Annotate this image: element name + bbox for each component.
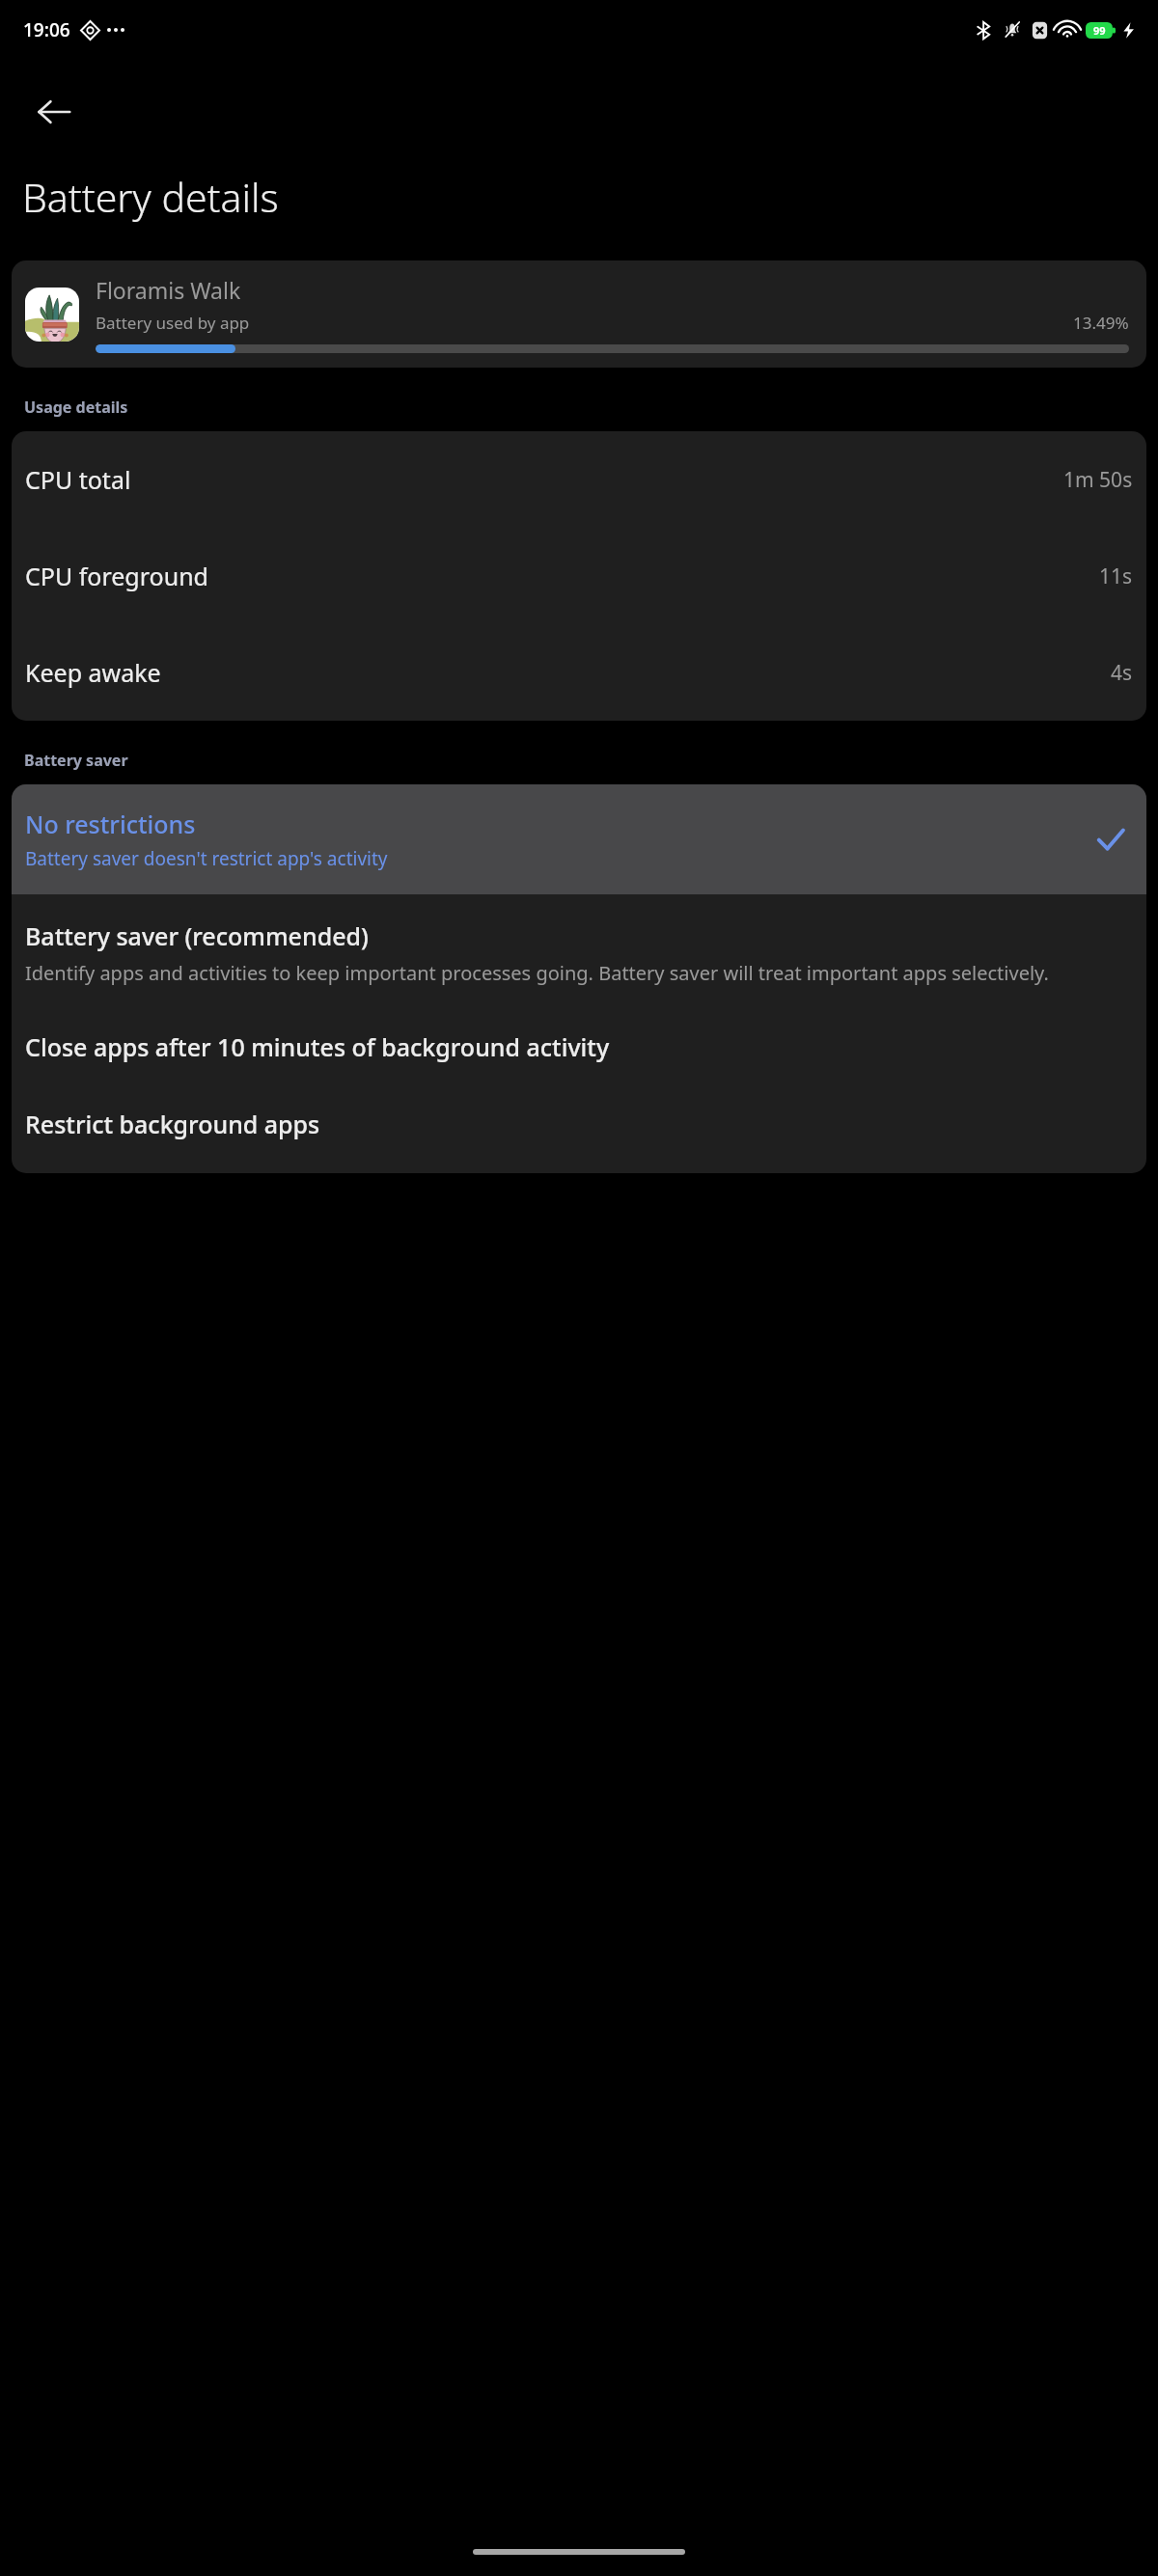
staticText: Floramis Walk (96, 275, 241, 305)
staticText: Restrict background apps (25, 1108, 320, 1140)
staticText: Battery saver (24, 750, 128, 771)
button[interactable]: No restrictions (12, 784, 1146, 894)
staticText: 1m 50s (1063, 466, 1133, 494)
staticText: Battery saver (recommended) (25, 919, 369, 952)
button[interactable]: CPU total (12, 431, 1146, 528)
button[interactable]: CPU foreground (12, 528, 1146, 624)
staticText: Identify apps and activities to keep imp… (25, 960, 1049, 986)
staticText: Battery saver doesn't restrict app's act… (25, 846, 388, 871)
staticText: 19:06 (23, 17, 70, 42)
button[interactable]: Back (23, 81, 85, 143)
button[interactable]: Keep awake (12, 624, 1146, 721)
staticText: Battery details (22, 170, 279, 224)
staticText: 4s (1111, 659, 1133, 687)
staticText: 13.49% (1073, 312, 1129, 334)
staticText: 11s (1099, 562, 1133, 590)
staticText: Keep awake (25, 656, 161, 689)
button[interactable]: Close apps after 10 minutes of backgroun… (12, 1009, 1146, 1086)
staticText: No restrictions (25, 808, 196, 840)
button[interactable]: Battery saver (recommended) (12, 894, 1146, 1009)
staticText: Usage details (24, 397, 128, 418)
staticText: CPU foreground (25, 560, 208, 592)
staticText: CPU total (25, 463, 131, 496)
staticText: Battery used by app (96, 312, 250, 334)
staticText: 99 (1093, 23, 1106, 38)
button[interactable]: Restrict background apps (12, 1086, 1146, 1173)
button[interactable]: Floramis Walk (12, 260, 1146, 368)
staticText: Close apps after 10 minutes of backgroun… (25, 1030, 610, 1063)
